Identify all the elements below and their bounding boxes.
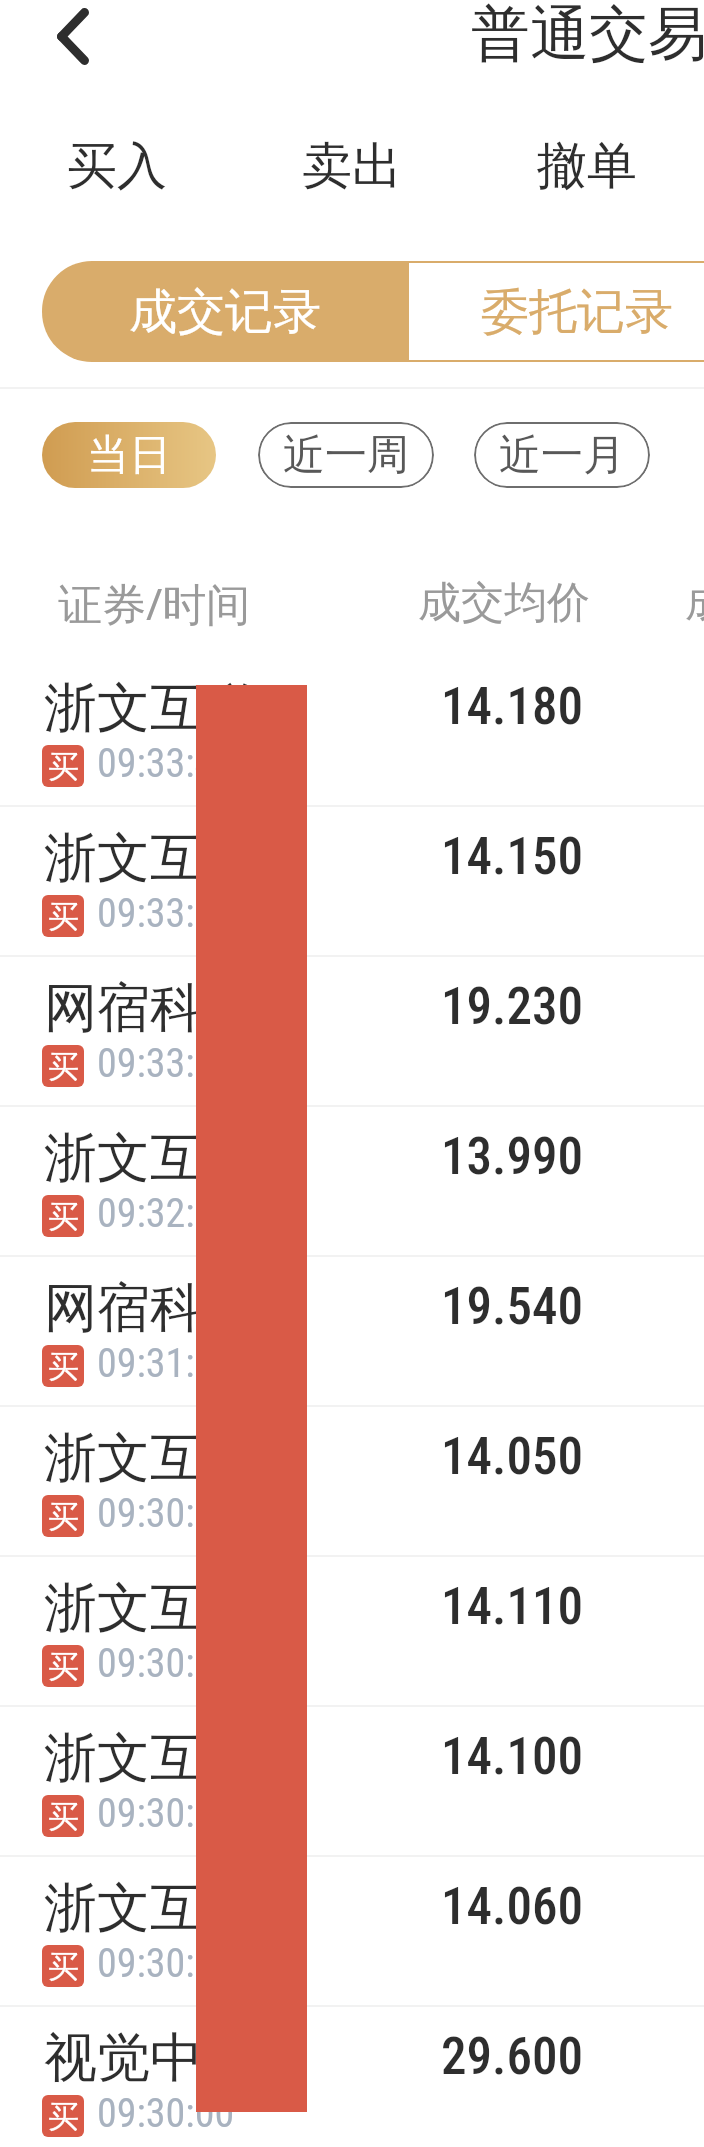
staticText: 成交记录 bbox=[129, 282, 321, 342]
staticText: 14.110 bbox=[441, 1577, 584, 1637]
staticText: 撤单 bbox=[537, 135, 637, 197]
button[interactable]: 委托记录 bbox=[407, 261, 704, 362]
staticText: 09:31:53 bbox=[97, 1340, 235, 1387]
staticText: 14.060 bbox=[441, 1877, 584, 1937]
button[interactable]: 撤单 bbox=[469, 135, 704, 197]
staticText: 09:30:00 bbox=[97, 2090, 235, 2137]
staticText: 09:33:33 bbox=[97, 890, 235, 937]
staticText: 买 bbox=[48, 1647, 79, 1686]
staticText: 浙文互联 bbox=[44, 1725, 256, 1792]
button[interactable]: 浙文互联 bbox=[0, 805, 704, 955]
staticText: 视觉中国 bbox=[44, 2025, 256, 2092]
staticText: 买 bbox=[48, 1347, 79, 1386]
staticText: 13.990 bbox=[441, 1127, 584, 1187]
staticText: 买 bbox=[48, 897, 79, 936]
staticText: 浙文互联 bbox=[44, 825, 256, 892]
staticText: 卖出 bbox=[302, 135, 402, 197]
staticText: 近一月 bbox=[499, 429, 625, 482]
staticText: 14.180 bbox=[441, 677, 584, 737]
staticText: 浙文互联 bbox=[44, 1125, 256, 1192]
staticText: 09:33:45 bbox=[97, 740, 235, 787]
staticText: 买入 bbox=[67, 135, 167, 197]
staticText: 浙文互联 bbox=[44, 675, 256, 742]
button[interactable]: 浙文互联 bbox=[0, 1705, 704, 1855]
button[interactable]: 当日 bbox=[42, 422, 216, 488]
staticText: 14.050 bbox=[441, 1427, 584, 1487]
staticText: 当日 bbox=[87, 429, 171, 482]
staticText: 买 bbox=[48, 747, 79, 786]
staticText: 09:30:54 bbox=[97, 1490, 235, 1537]
button[interactable]: 成交记录 bbox=[42, 261, 407, 362]
button[interactable]: 卖出 bbox=[234, 135, 469, 197]
staticText: 浙文互联 bbox=[44, 1425, 256, 1492]
staticText: 买 bbox=[48, 2097, 79, 2136]
button[interactable]: 买入 bbox=[0, 135, 234, 197]
staticText: 网宿科技 bbox=[44, 975, 256, 1042]
button[interactable]: 近一周 bbox=[258, 422, 434, 488]
staticText: 买 bbox=[48, 1197, 79, 1236]
staticText: 委托记录 bbox=[481, 282, 673, 342]
button[interactable]: 浙文互联 bbox=[0, 1555, 704, 1705]
staticText: 09:33:21 bbox=[97, 1040, 235, 1087]
button[interactable]: 视觉中国 bbox=[0, 2005, 704, 2147]
staticText: 浙文互联 bbox=[44, 1575, 256, 1642]
staticText: 普通交易 bbox=[471, 0, 704, 71]
button[interactable]: 浙文互联 bbox=[0, 1855, 704, 2005]
staticText: 证券/时间 bbox=[58, 573, 251, 633]
staticText: 14.100 bbox=[441, 1727, 584, 1787]
button[interactable]: 浙文互联 bbox=[0, 655, 704, 805]
button[interactable]: Back bbox=[30, 0, 115, 72]
staticText: 19.230 bbox=[441, 977, 584, 1037]
button[interactable]: 浙文互联 bbox=[0, 1105, 704, 1255]
staticText: 成交均价 bbox=[418, 576, 590, 630]
staticText: 买 bbox=[48, 1797, 79, 1836]
staticText: 近一周 bbox=[283, 429, 409, 482]
staticText: 网宿科技 bbox=[44, 1275, 256, 1342]
button[interactable]: 近一月 bbox=[474, 422, 650, 488]
staticText: 19.540 bbox=[441, 1277, 584, 1337]
button[interactable]: 网宿科技 bbox=[0, 955, 704, 1105]
staticText: 浙文互联 bbox=[44, 1875, 256, 1942]
staticText: 成交数量 bbox=[685, 576, 704, 630]
staticText: 09:32:05 bbox=[97, 1190, 235, 1237]
staticText: 买 bbox=[48, 1497, 79, 1536]
staticText: 买 bbox=[48, 1947, 79, 1986]
staticText: 09:30:21 bbox=[97, 1790, 235, 1837]
button[interactable]: 网宿科技 bbox=[0, 1255, 704, 1405]
staticText: 买 bbox=[48, 1047, 79, 1086]
staticText: 09:30:09 bbox=[97, 1940, 235, 1987]
button[interactable]: 浙文互联 bbox=[0, 1405, 704, 1555]
staticText: 29.600 bbox=[441, 2027, 584, 2087]
staticText: 09:30:33 bbox=[97, 1640, 235, 1687]
staticText: 14.150 bbox=[441, 827, 584, 887]
